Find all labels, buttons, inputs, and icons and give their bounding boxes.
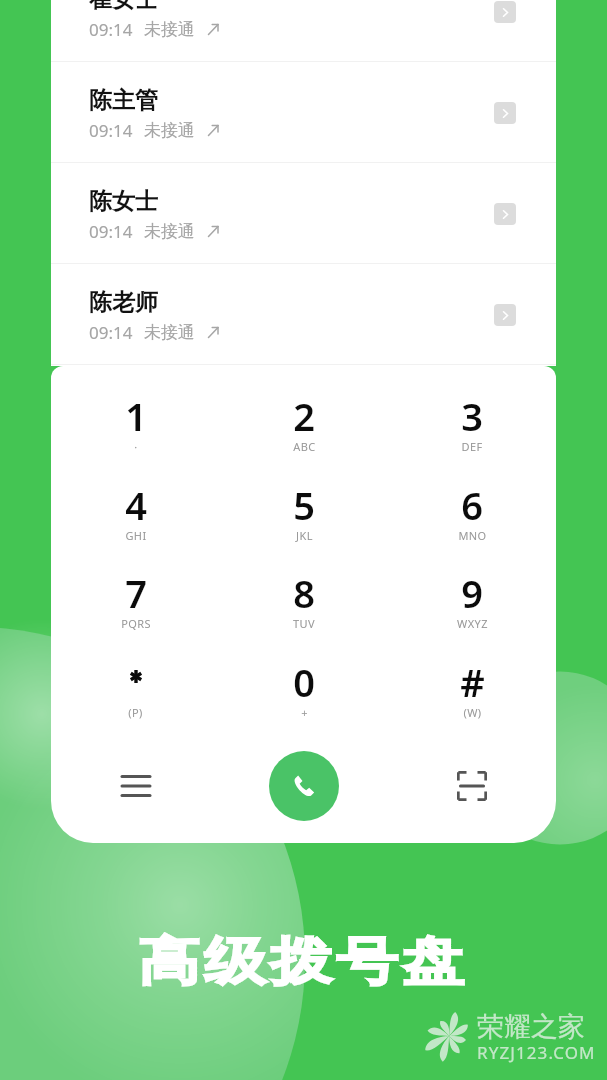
button[interactable]: 8 <box>220 552 388 640</box>
staticText: 陈老师 <box>89 288 158 317</box>
staticText: (P) <box>128 705 143 720</box>
button[interactable]: 9 <box>388 552 556 640</box>
button[interactable]: (P) <box>51 641 220 729</box>
staticText: 7 <box>125 567 147 619</box>
staticText: WXYZ <box>457 616 488 631</box>
staticText: JKL <box>296 528 313 543</box>
staticText: 0 <box>293 656 315 708</box>
staticText: # <box>460 656 485 708</box>
staticText: 09:14 <box>89 220 133 243</box>
staticText: GHI <box>125 528 147 543</box>
staticText: 未接通 <box>144 322 195 343</box>
button[interactable]: 5 <box>220 464 388 552</box>
staticText: 09:14 <box>89 321 133 344</box>
button[interactable]: Menu <box>51 734 220 837</box>
staticText: 4 <box>125 479 147 531</box>
staticText: 2 <box>293 390 315 442</box>
button[interactable]: 陈老师 <box>51 264 556 365</box>
button[interactable]: 陈女士 <box>51 163 556 264</box>
staticText: 1 <box>125 390 147 442</box>
staticText: 未接通 <box>144 221 195 242</box>
staticText: ABC <box>293 439 316 454</box>
staticText: RYZJ123.COM <box>477 1041 596 1064</box>
staticText: TUV <box>293 616 315 631</box>
staticText: 5 <box>293 479 315 531</box>
button[interactable]: 6 <box>388 464 556 552</box>
staticText: 3 <box>461 390 483 442</box>
staticText: DEF <box>461 439 483 454</box>
staticText: 荣耀之家 <box>477 1010 585 1044</box>
staticText: 未接通 <box>144 19 195 40</box>
button[interactable]: # <box>388 641 556 729</box>
staticText: MNO <box>458 528 487 543</box>
staticText: 未接通 <box>144 120 195 141</box>
staticText: + <box>301 705 308 720</box>
staticText: 高级拨号盘 <box>136 930 466 994</box>
staticText: 8 <box>293 567 315 619</box>
staticText: 陈主管 <box>89 86 158 115</box>
button[interactable]: 崔女士 <box>51 0 556 62</box>
button[interactable]: 2 <box>220 375 388 463</box>
staticText: 崔女士 <box>89 0 158 14</box>
staticText: 6 <box>461 479 483 531</box>
staticText: · <box>134 439 138 454</box>
button[interactable]: 0 <box>220 641 388 729</box>
button[interactable]: 陈主管 <box>51 62 556 163</box>
staticText: 09:14 <box>89 119 133 142</box>
staticText: 09:14 <box>89 18 133 41</box>
button[interactable]: 3 <box>388 375 556 463</box>
staticText: 9 <box>461 567 483 619</box>
button[interactable]: 7 <box>51 552 220 640</box>
staticText: 陈女士 <box>89 187 158 216</box>
button[interactable]: 4 <box>51 464 220 552</box>
button[interactable]: Scan <box>388 734 556 837</box>
button[interactable]: Call <box>269 751 339 821</box>
button[interactable]: 1 <box>51 375 220 463</box>
staticText: (W) <box>463 705 482 720</box>
staticText: PQRS <box>121 616 151 631</box>
